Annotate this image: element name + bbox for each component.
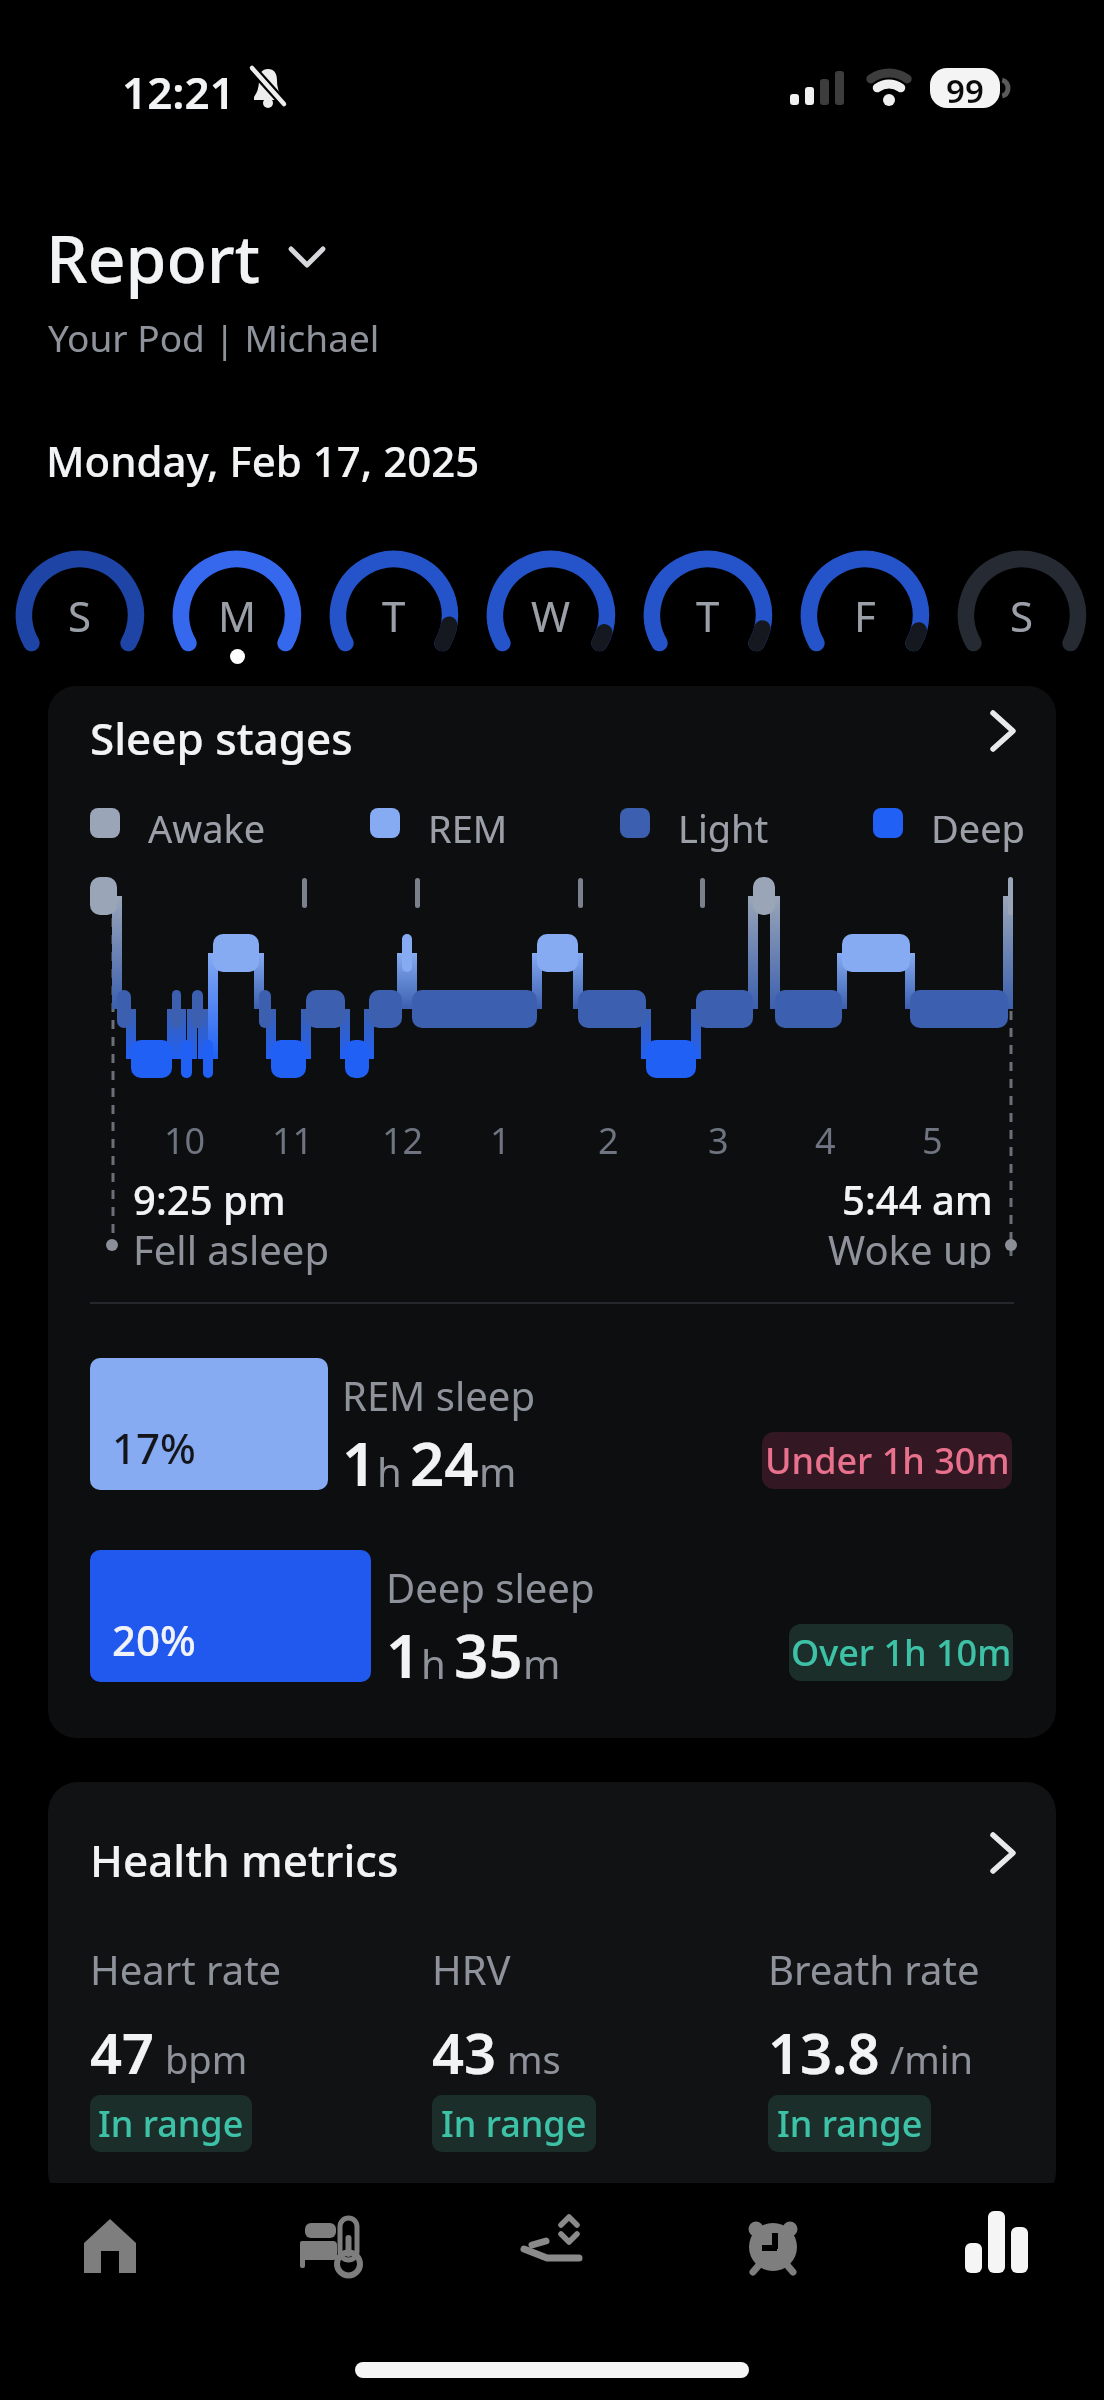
- staticText: Monday, Feb 17, 2025: [46, 432, 480, 489]
- staticText: REM sleep: [342, 1368, 535, 1422]
- staticText: Report: [46, 212, 261, 302]
- staticText: Fell asleep: [133, 1222, 329, 1276]
- staticText: HRV: [432, 1942, 511, 1996]
- staticText: m: [523, 1636, 561, 1690]
- staticText: 99: [946, 68, 984, 108]
- staticText: Over 1h 10m: [791, 1628, 1012, 1677]
- staticText: 20%: [112, 1611, 196, 1668]
- staticText: 1: [342, 1422, 377, 1504]
- staticText: Sleep stages: [90, 708, 353, 768]
- button[interactable]: S: [10, 545, 150, 685]
- staticText: S: [68, 587, 92, 644]
- button[interactable]: Health metrics: [48, 1782, 1056, 2202]
- staticText: REM: [428, 802, 508, 854]
- staticText: 1: [490, 1116, 511, 1160]
- staticText: T: [696, 587, 720, 644]
- staticText: M: [218, 587, 257, 644]
- staticText: Your Pod | Michael: [48, 312, 380, 362]
- staticText: h: [377, 1444, 402, 1498]
- staticText: bpm: [165, 2033, 248, 2085]
- staticText: 5: [922, 1116, 943, 1160]
- staticText: Heart rate: [90, 1942, 282, 1996]
- staticText: Deep: [931, 802, 1025, 854]
- staticText: 10: [164, 1116, 206, 1160]
- staticText: Awake: [148, 802, 266, 854]
- staticText: 13.8: [768, 2014, 880, 2090]
- staticText: 43: [432, 2014, 497, 2090]
- staticText: /min: [890, 2033, 973, 2085]
- staticText: W: [531, 587, 571, 644]
- staticText: In range: [441, 2099, 587, 2148]
- staticText: 35: [454, 1614, 523, 1696]
- staticText: 47: [90, 2014, 155, 2090]
- staticText: 12:21: [122, 62, 235, 122]
- button[interactable]: S: [952, 545, 1092, 685]
- staticText: Breath rate: [768, 1942, 980, 1996]
- staticText: 4: [815, 1116, 836, 1160]
- button[interactable]: [662, 2183, 883, 2400]
- staticText: 17%: [112, 1419, 196, 1476]
- button[interactable]: W: [481, 545, 621, 685]
- staticText: m: [479, 1444, 517, 1498]
- staticText: h: [421, 1636, 446, 1690]
- staticText: In range: [777, 2099, 923, 2148]
- staticText: 24: [410, 1422, 479, 1504]
- staticText: 5:44 am: [842, 1172, 993, 1218]
- button[interactable]: Report: [46, 212, 325, 302]
- staticText: Under 1h 30m: [765, 1436, 1010, 1485]
- button[interactable]: [883, 2183, 1104, 2400]
- staticText: Woke up: [828, 1222, 993, 1268]
- staticText: Health metrics: [90, 1830, 399, 1890]
- button[interactable]: [441, 2183, 662, 2400]
- staticText: In range: [98, 2099, 244, 2148]
- staticText: F: [854, 587, 876, 644]
- button[interactable]: F: [795, 545, 935, 685]
- button[interactable]: [220, 2183, 441, 2400]
- staticText: S: [1010, 587, 1034, 644]
- staticText: 9:25 pm: [133, 1172, 286, 1226]
- staticText: 11: [272, 1116, 314, 1160]
- button[interactable]: Sleep stages: [48, 686, 1056, 1738]
- staticText: Deep sleep: [386, 1560, 595, 1614]
- staticText: Light: [678, 802, 769, 854]
- staticText: T: [382, 587, 406, 644]
- staticText: 1: [386, 1614, 421, 1696]
- button[interactable]: T: [324, 545, 464, 685]
- button[interactable]: [0, 2183, 220, 2400]
- staticText: 2: [598, 1116, 619, 1160]
- staticText: 12: [382, 1116, 424, 1160]
- button[interactable]: M: [167, 545, 307, 685]
- staticText: ms: [507, 2033, 561, 2085]
- staticText: 3: [708, 1116, 729, 1160]
- button[interactable]: T: [638, 545, 778, 685]
